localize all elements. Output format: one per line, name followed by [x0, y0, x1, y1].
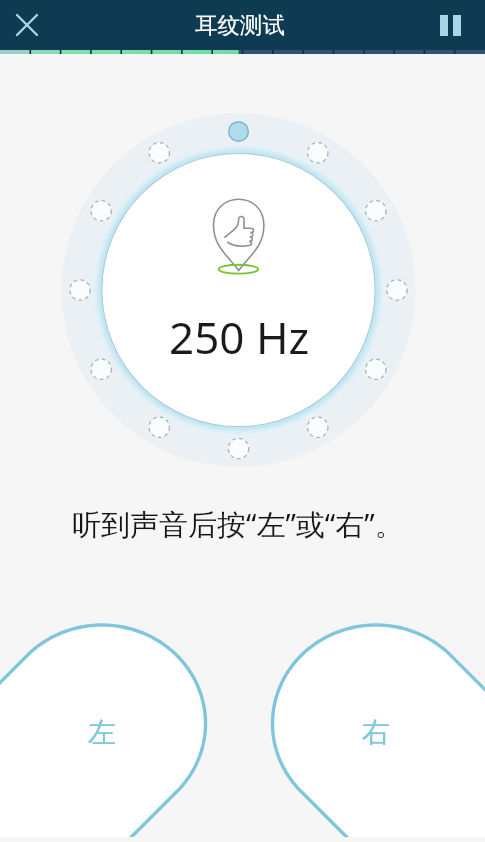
button[interactable]: 右 — [276, 632, 476, 832]
staticText: 250 Hz — [169, 307, 310, 367]
button[interactable]: Close — [4, 2, 50, 48]
staticText: 右 — [362, 715, 390, 750]
staticText: 耳纹测试 — [195, 11, 285, 39]
button[interactable]: Pause — [427, 2, 473, 48]
staticText: 左 — [88, 715, 116, 750]
button[interactable]: 左 — [2, 632, 202, 832]
staticText: 听到声音后按“左”或“右”。 — [72, 504, 404, 544]
